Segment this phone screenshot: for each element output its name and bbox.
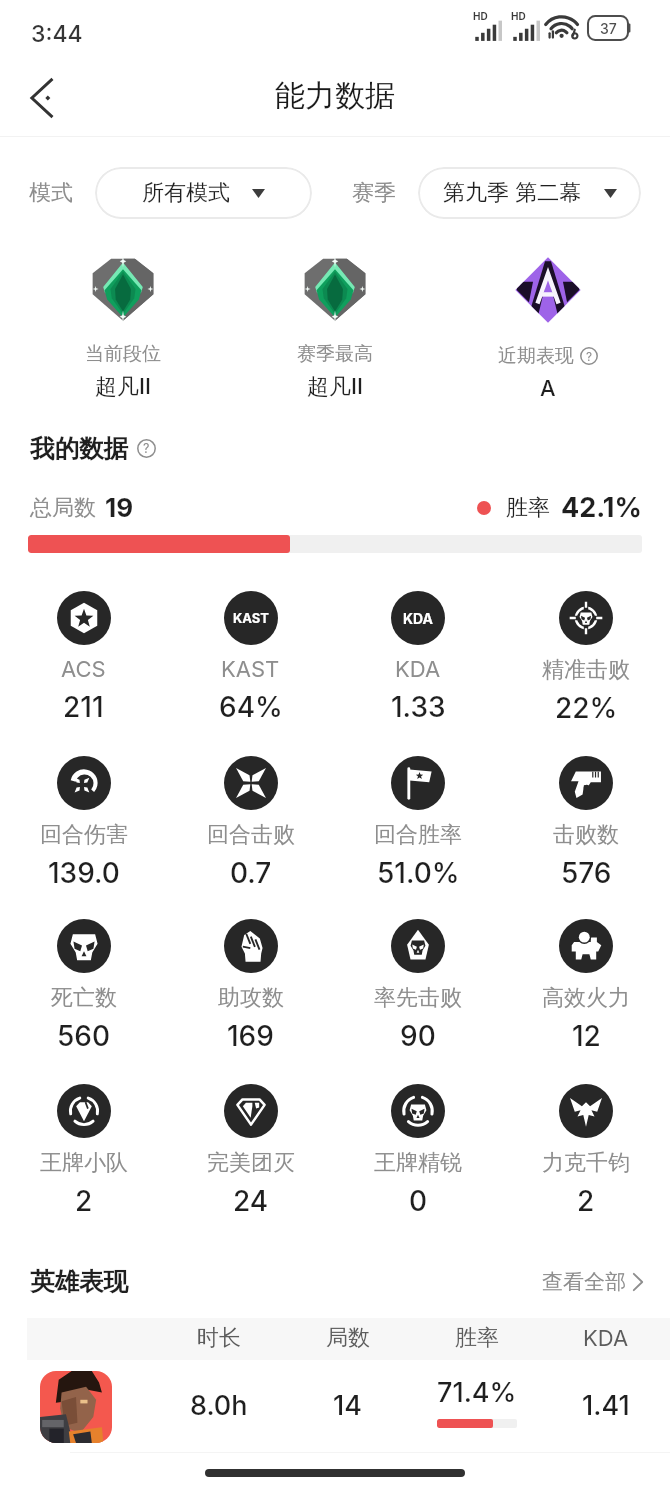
staticText: ACS: [61, 656, 106, 683]
staticText: 近期表现: [498, 344, 574, 368]
staticText: ?: [143, 441, 150, 456]
staticText: 1.41: [582, 1389, 630, 1422]
button[interactable]: 死亡数: [0, 919, 167, 1053]
button[interactable]: 高效火力: [502, 919, 670, 1053]
staticText: 能力数据: [275, 77, 395, 115]
staticText: 击败数: [553, 821, 619, 849]
button[interactable]: 所有模式: [95, 167, 312, 219]
staticText: 90: [400, 1019, 436, 1053]
staticText: 精准击败: [542, 656, 630, 684]
staticText: 37: [600, 20, 617, 37]
staticText: 19: [105, 492, 134, 523]
staticText: 助攻数: [218, 984, 284, 1012]
staticText: 模式: [29, 179, 73, 207]
button[interactable]: 助攻数: [167, 919, 334, 1053]
staticText: 死亡数: [51, 984, 117, 1012]
staticText: KDA: [583, 1325, 629, 1352]
staticText: 所有模式: [142, 179, 230, 207]
staticText: 211: [63, 690, 104, 724]
staticText: 完美团灭: [207, 1149, 295, 1177]
staticText: 赛季: [352, 179, 396, 207]
staticText: 总局数: [30, 494, 96, 522]
staticText: 英雄表现: [30, 1266, 128, 1297]
button[interactable]: 王牌精锐: [334, 1084, 502, 1218]
staticText: 22%: [555, 691, 618, 725]
staticText: 高效火力: [542, 984, 630, 1012]
button[interactable]: 8.0h: [0, 1355, 670, 1459]
staticText: 率先击败: [374, 984, 462, 1012]
button[interactable]: KAST: [167, 591, 334, 724]
staticText: 3:44: [31, 20, 83, 48]
staticText: 560: [57, 1019, 111, 1053]
staticText: A: [540, 375, 556, 402]
staticText: 139.0: [48, 856, 120, 890]
staticText: 576: [561, 856, 612, 890]
staticText: 力克千钧: [542, 1149, 630, 1177]
button[interactable]: 精准击败: [502, 591, 670, 725]
staticText: 当前段位: [85, 342, 161, 366]
staticText: HD: [473, 10, 488, 22]
staticText: 2: [577, 1184, 595, 1218]
staticText: 169: [227, 1019, 274, 1053]
staticText: 超凡II: [95, 373, 151, 401]
staticText: 我的数据: [30, 433, 128, 464]
button[interactable]: Back: [13, 68, 73, 128]
button[interactable]: 力克千钧: [502, 1084, 670, 1218]
staticText: 14: [333, 1389, 362, 1422]
staticText: 12: [572, 1019, 601, 1053]
button[interactable]: 查看全部: [542, 1269, 644, 1295]
staticText: 2: [75, 1184, 93, 1218]
staticText: KDA: [395, 656, 441, 683]
button[interactable]: ACS: [0, 591, 167, 724]
staticText: 王牌小队: [40, 1149, 128, 1177]
staticText: 胜率: [506, 494, 550, 522]
staticText: 回合伤害: [40, 821, 128, 849]
staticText: KAST: [221, 656, 280, 683]
staticText: 局数: [326, 1324, 370, 1352]
button[interactable]: KDA: [334, 591, 502, 724]
staticText: 回合胜率: [374, 821, 462, 849]
staticText: 8.0h: [190, 1389, 248, 1422]
button[interactable]: 回合胜率: [334, 756, 502, 890]
staticText: 胜率: [455, 1324, 499, 1352]
staticText: 0.7: [230, 856, 272, 890]
staticText: 赛季最高: [297, 342, 373, 366]
staticText: 时长: [197, 1324, 241, 1352]
staticText: KAST: [233, 610, 270, 626]
staticText: 71.4%: [437, 1376, 517, 1409]
staticText: 0: [409, 1184, 428, 1218]
button[interactable]: 完美团灭: [167, 1084, 334, 1218]
button[interactable]: 王牌小队: [0, 1084, 167, 1218]
staticText: 64%: [219, 690, 283, 724]
button[interactable]: 第九季 第二幕: [418, 167, 641, 219]
staticText: HD: [511, 10, 526, 22]
staticText: 查看全部: [542, 1269, 626, 1295]
button[interactable]: 击败数: [502, 756, 670, 890]
staticText: KDA: [403, 610, 434, 627]
staticText: ?: [586, 349, 593, 363]
button[interactable]: 回合击败: [167, 756, 334, 890]
button[interactable]: 回合伤害: [0, 756, 167, 890]
staticText: 1.33: [391, 690, 446, 724]
staticText: 回合击败: [207, 821, 295, 849]
staticText: 超凡II: [307, 373, 363, 401]
button[interactable]: 率先击败: [334, 919, 502, 1053]
staticText: 24: [233, 1184, 269, 1218]
staticText: 42.1%: [561, 491, 642, 524]
staticText: 王牌精锐: [374, 1149, 462, 1177]
staticText: 51.0%: [377, 856, 460, 890]
staticText: 第九季 第二幕: [443, 179, 582, 207]
